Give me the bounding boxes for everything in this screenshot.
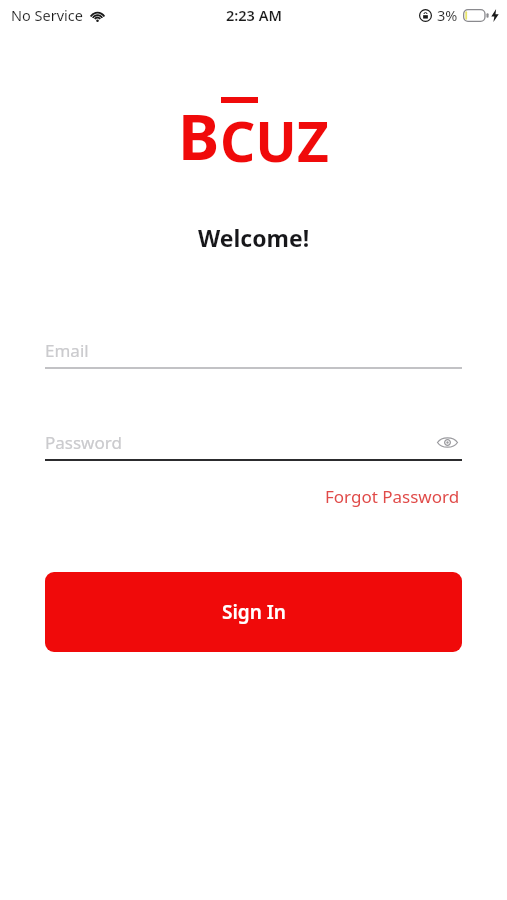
staticText: Welcome!	[198, 222, 310, 253]
staticText: 2:23 AM	[226, 5, 282, 25]
button[interactable]: Sign In	[45, 572, 462, 652]
staticText: Email	[45, 339, 89, 362]
button[interactable]: Password	[45, 425, 462, 461]
staticText: No Service	[11, 5, 83, 25]
button[interactable]: Forgot Password	[323, 481, 462, 512]
staticText: 3%	[437, 5, 458, 25]
button[interactable]: Show password	[432, 427, 462, 457]
staticText: Sign In	[222, 599, 286, 625]
staticText: Forgot Password	[325, 485, 460, 508]
staticText: CUZ	[220, 103, 329, 178]
staticText: Password	[45, 431, 122, 454]
button[interactable]: Email	[45, 333, 462, 369]
staticText: B	[178, 94, 220, 178]
